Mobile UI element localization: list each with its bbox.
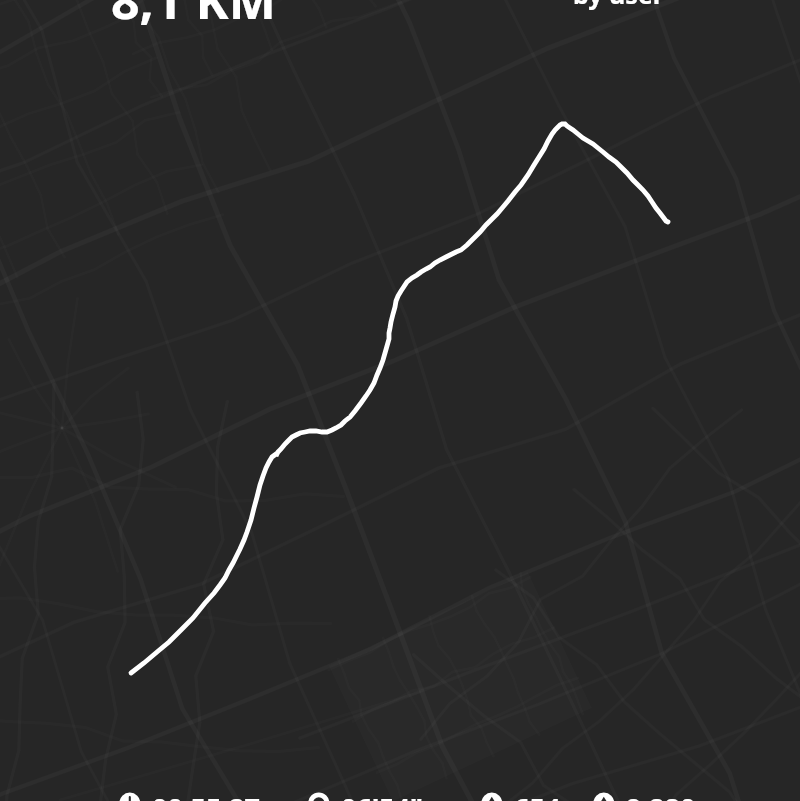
staticText: 00:55:27 (152, 789, 260, 801)
staticText: 9.880 (626, 789, 696, 801)
staticText: 06'54" (341, 789, 423, 801)
button[interactable]: 654 (482, 789, 561, 801)
button[interactable]: 06'54" (309, 789, 423, 801)
staticText: by user (573, 0, 664, 11)
button[interactable]: 9.880 (594, 789, 696, 801)
button[interactable]: 00:55:27 (120, 789, 260, 801)
button[interactable]: 8,1 KM (111, 0, 276, 34)
button[interactable]: by user (573, 0, 664, 11)
staticText: 8,1 KM (111, 0, 276, 34)
staticText: 654 (514, 789, 561, 801)
